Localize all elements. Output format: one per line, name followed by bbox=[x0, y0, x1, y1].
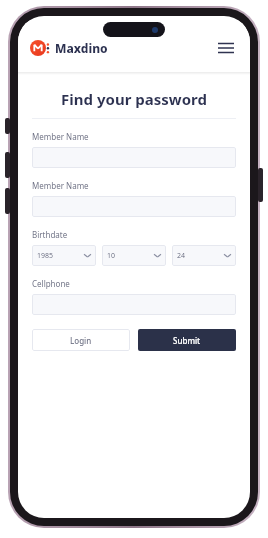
staticText: 24 bbox=[177, 251, 186, 261]
staticText: Maxdino bbox=[55, 40, 108, 56]
button[interactable] bbox=[32, 196, 236, 217]
staticText: Member Name bbox=[32, 180, 89, 191]
staticText: Birthdate bbox=[32, 229, 68, 240]
staticText: Cellphone bbox=[32, 278, 70, 289]
staticText: Login bbox=[70, 335, 92, 346]
staticText: Submit bbox=[173, 335, 201, 346]
button[interactable]: 10 bbox=[102, 245, 166, 266]
button[interactable] bbox=[32, 294, 236, 315]
button[interactable]: 24 bbox=[172, 245, 236, 266]
staticText: Member Name bbox=[32, 131, 89, 142]
button[interactable]: Submit bbox=[138, 329, 236, 351]
staticText: 1985 bbox=[37, 251, 54, 261]
staticText: Find your password bbox=[32, 89, 236, 109]
button[interactable]: 1985 bbox=[32, 245, 96, 266]
button[interactable] bbox=[32, 147, 236, 168]
staticText: 10 bbox=[107, 251, 116, 261]
button[interactable]: Login bbox=[32, 329, 130, 351]
button[interactable]: Open menu bbox=[214, 36, 238, 60]
